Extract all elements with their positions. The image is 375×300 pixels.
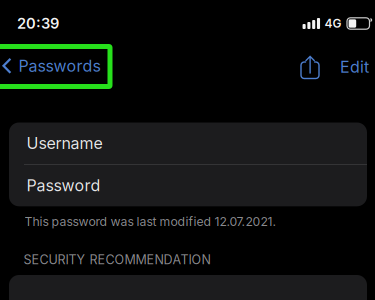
button[interactable]: Passwords [0,49,160,83]
staticText: 4G [324,16,341,31]
staticText: Edit [340,57,369,77]
staticText: Password [26,176,100,195]
staticText: SECURITY RECOMMENDATION [23,252,210,267]
button[interactable]: Share [296,53,324,81]
staticText: This password was last modified 12.07.20… [24,214,276,229]
button[interactable]: Edit [340,53,375,81]
button[interactable]: Password [9,165,367,206]
staticText: 20:39 [17,15,59,32]
button[interactable]: Username [9,122,367,164]
staticText: Passwords [18,56,100,76]
staticText: Username [26,134,102,153]
